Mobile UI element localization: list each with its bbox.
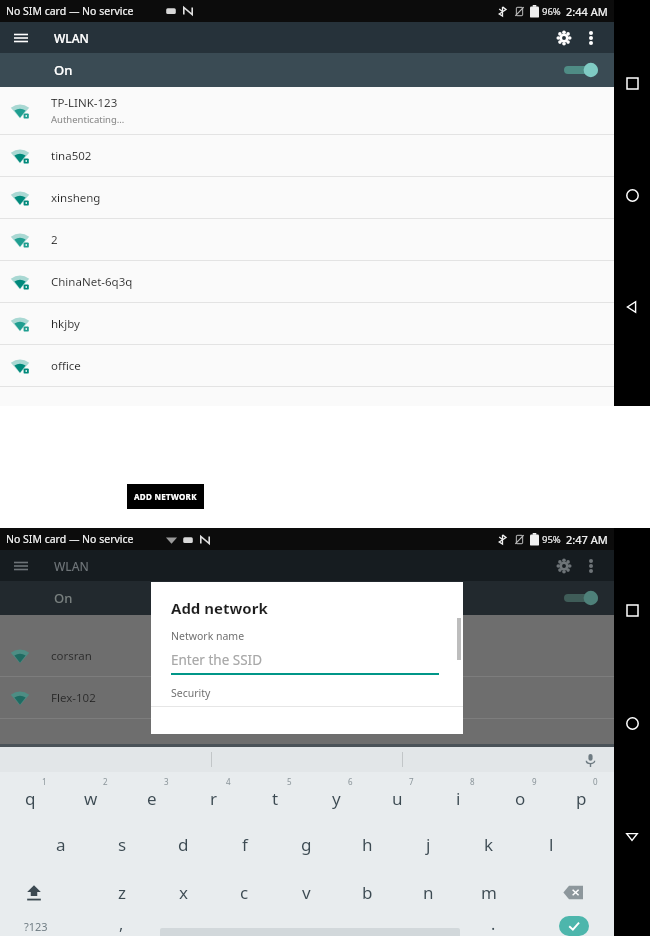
- button[interactable]: On: [0, 53, 614, 87]
- staticText: t: [272, 787, 279, 810]
- staticText: s: [118, 833, 127, 856]
- button[interactable]: corsran: [0, 635, 614, 677]
- button[interactable]: u: [369, 772, 425, 820]
- button[interactable]: m: [461, 868, 517, 916]
- button[interactable]: q: [2, 772, 58, 820]
- staticText: q: [25, 787, 36, 810]
- staticText: v: [302, 881, 311, 904]
- staticText: n: [423, 881, 434, 904]
- staticText: TP-LINK-123: [51, 95, 118, 111]
- button[interactable]: Recents: [619, 597, 645, 623]
- button[interactable]: d: [155, 820, 211, 868]
- button[interactable]: Back: [619, 823, 645, 849]
- staticText: 9: [532, 776, 537, 787]
- staticText: No SIM card — No service: [6, 532, 134, 546]
- staticText: d: [178, 833, 189, 856]
- button[interactable]: a: [33, 820, 89, 868]
- staticText: tina502: [51, 148, 92, 164]
- staticText: p: [576, 787, 587, 810]
- button[interactable]: Settings: [552, 26, 576, 50]
- button[interactable]: n: [400, 868, 456, 916]
- staticText: j: [426, 833, 431, 856]
- staticText: 96%: [542, 5, 561, 18]
- button[interactable]: office: [0, 345, 614, 387]
- button[interactable]: tina502: [0, 135, 614, 177]
- staticText: WLAN: [54, 558, 89, 574]
- button[interactable]: More options: [580, 555, 602, 577]
- staticText: a: [56, 833, 66, 856]
- button[interactable]: z: [94, 868, 150, 916]
- button[interactable]: On: [0, 581, 614, 615]
- button[interactable]: f: [217, 820, 273, 868]
- button[interactable]: r: [186, 772, 242, 820]
- staticText: 5: [287, 776, 292, 787]
- staticText: 7: [409, 776, 414, 787]
- button[interactable]: Home: [619, 182, 645, 208]
- staticText: Add network: [171, 598, 268, 618]
- button[interactable]: y: [308, 772, 364, 820]
- button[interactable]: ADD NETWORK: [127, 484, 204, 509]
- button[interactable]: Settings: [552, 554, 576, 578]
- button[interactable]: c: [216, 868, 272, 916]
- button[interactable]: w: [63, 772, 119, 820]
- button[interactable]: j: [400, 820, 456, 868]
- staticText: 2: [51, 232, 58, 248]
- staticText: b: [362, 881, 373, 904]
- staticText: k: [484, 833, 494, 856]
- staticText: f: [242, 833, 248, 856]
- button[interactable]: s: [94, 820, 150, 868]
- button[interactable]: Shift: [6, 868, 62, 916]
- staticText: xinsheng: [51, 190, 101, 206]
- staticText: y: [332, 787, 341, 810]
- staticText: On: [54, 61, 73, 79]
- button[interactable]: ,: [96, 916, 146, 936]
- staticText: e: [147, 787, 157, 810]
- button[interactable]: g: [278, 820, 334, 868]
- staticText: m: [481, 881, 497, 904]
- button[interactable]: Menu: [10, 555, 32, 577]
- button[interactable]: ?123: [6, 916, 66, 936]
- button[interactable]: Voice input: [580, 750, 600, 770]
- button[interactable]: h: [339, 820, 395, 868]
- button[interactable]: t: [247, 772, 303, 820]
- button[interactable]: i: [430, 772, 486, 820]
- button[interactable]: b: [339, 868, 395, 916]
- button[interactable]: e: [124, 772, 180, 820]
- staticText: office: [51, 358, 81, 374]
- button[interactable]: Flex-102: [0, 677, 614, 719]
- button[interactable]: p: [553, 772, 609, 820]
- button[interactable]: Recents: [619, 70, 645, 96]
- staticText: 2: [103, 776, 108, 787]
- button[interactable]: ChinaNet-6q3q: [0, 261, 614, 303]
- button[interactable]: TP-LINK-123: [0, 87, 614, 135]
- button[interactable]: l: [523, 820, 579, 868]
- button[interactable]: Home: [619, 710, 645, 736]
- button[interactable]: k: [461, 820, 517, 868]
- staticText: Network name: [171, 629, 245, 643]
- button[interactable]: Delete: [545, 868, 601, 916]
- staticText: 95%: [542, 533, 561, 546]
- button[interactable]: hkjby: [0, 303, 614, 345]
- button[interactable]: x: [155, 868, 211, 916]
- staticText: 2:47 AM: [566, 532, 608, 547]
- button[interactable]: More options: [580, 27, 602, 49]
- staticText: Enter the SSID: [171, 651, 263, 669]
- button[interactable]: .: [468, 916, 518, 936]
- staticText: Authenticating…: [51, 113, 125, 126]
- button[interactable]: 2: [0, 219, 614, 261]
- button[interactable]: Enter: [548, 916, 600, 936]
- button[interactable]: xinsheng: [0, 177, 614, 219]
- staticText: u: [392, 787, 403, 810]
- staticText: 0: [593, 776, 598, 787]
- button[interactable]: Back: [619, 294, 645, 320]
- staticText: z: [118, 881, 126, 904]
- staticText: 4: [226, 776, 231, 787]
- button[interactable]: v: [278, 868, 334, 916]
- button[interactable]: Menu: [10, 27, 32, 49]
- button[interactable]: o: [492, 772, 548, 820]
- staticText: x: [179, 881, 188, 904]
